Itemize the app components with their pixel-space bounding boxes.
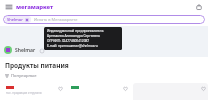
button[interactable]: тыс. продавцов отгрузили xyxy=(3,83,65,100)
button[interactable]: Популярные xyxy=(5,73,37,79)
staticText: Искать в Мегамаркете xyxy=(34,17,78,22)
button[interactable]: Cart xyxy=(194,2,204,12)
button[interactable]: Add to favourites xyxy=(200,85,206,91)
staticText: тыс. продавцов отгрузили xyxy=(6,91,42,95)
button[interactable]: Shelmar xyxy=(3,15,205,24)
button[interactable]: Megamarket home xyxy=(16,3,53,11)
button[interactable]: Add to favourites xyxy=(68,83,130,100)
staticText: Shelmar xyxy=(15,47,36,54)
staticText: Shelmar xyxy=(7,17,23,22)
staticText: Популярные xyxy=(11,73,37,79)
staticText: мегамаркет xyxy=(16,3,53,11)
button[interactable]: Shelmar xyxy=(4,46,44,54)
staticText: Продукты питания xyxy=(5,61,69,70)
staticText: Артемьева Александра Сергеевна xyxy=(47,34,100,38)
button[interactable]: Menu xyxy=(4,2,13,11)
staticText: E-mail: приглашение@shelmar.ru xyxy=(47,44,98,48)
staticText: ОГРНИП: 324774600412087 xyxy=(47,39,90,43)
button[interactable]: Add to favourites xyxy=(133,83,208,100)
button[interactable]: Add to favourites xyxy=(122,85,128,91)
button[interactable]: Add to favourites xyxy=(57,85,63,91)
button[interactable]: Shelmar xyxy=(5,16,31,23)
button[interactable]: Seller info xyxy=(39,48,44,53)
other: Remove filter xyxy=(25,18,29,22)
staticText: Индивидуальный предприниматель xyxy=(47,29,104,33)
